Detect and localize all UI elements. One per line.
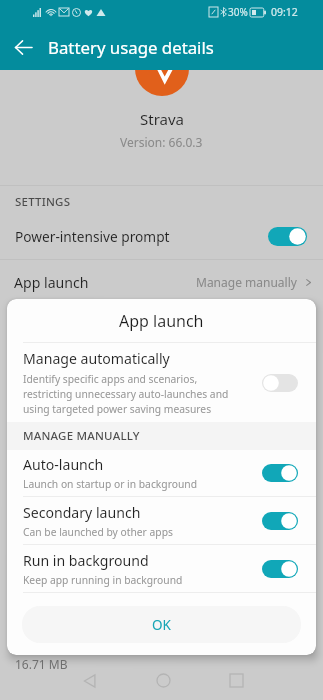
- button[interactable]: Power-intensive prompt: [0, 213, 323, 259]
- staticText: OK: [152, 616, 171, 634]
- staticText: Manage manually: [196, 274, 297, 290]
- staticText: Launch on startup or in background: [23, 477, 197, 491]
- button[interactable]: Run in background: [7, 545, 316, 592]
- staticText: 09:12: [271, 5, 298, 19]
- button[interactable]: App launch: [0, 260, 323, 304]
- staticText: MANAGE MANUALLY: [23, 428, 140, 444]
- staticText: Keep app running in background: [23, 573, 183, 587]
- button[interactable]: Auto-launch: [7, 450, 316, 496]
- staticText: Identify specific apps and scenarios, re…: [23, 372, 229, 416]
- staticText: App launch: [14, 273, 89, 292]
- staticText: Secondary launch: [23, 503, 141, 522]
- staticText: Battery usage details: [48, 36, 214, 59]
- button[interactable]: OK: [22, 606, 301, 643]
- staticText: Manage automatically: [23, 349, 170, 368]
- button[interactable]: Manage automatically: [7, 343, 316, 422]
- staticText: Can be launched by other apps: [23, 525, 173, 539]
- button[interactable]: Back: [0, 24, 46, 70]
- staticText: 16.71 MB: [15, 656, 68, 672]
- staticText: Auto-launch: [23, 455, 104, 474]
- staticText: Strava: [140, 109, 184, 129]
- staticText: App launch: [119, 310, 204, 332]
- button[interactable]: Home: [141, 661, 185, 700]
- staticText: SETTINGS: [15, 194, 71, 210]
- button[interactable]: Recents: [214, 661, 258, 700]
- button[interactable]: Back: [68, 661, 112, 700]
- staticText: Version: 66.0.3: [120, 134, 203, 150]
- staticText: Run in background: [23, 551, 149, 570]
- staticText: Power-intensive prompt: [15, 227, 170, 246]
- staticText: 30%: [228, 5, 248, 19]
- button[interactable]: Secondary launch: [7, 497, 316, 544]
